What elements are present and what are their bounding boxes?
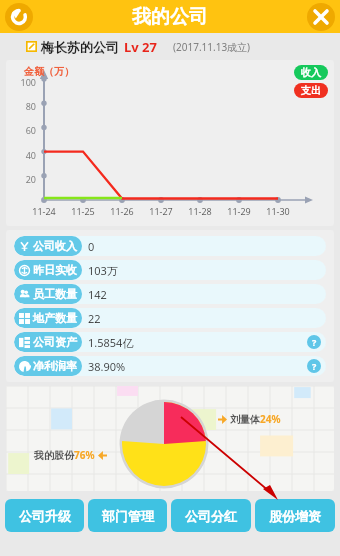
- staticText: 股份增资: [269, 508, 321, 524]
- button[interactable]: 公司分红: [171, 499, 251, 532]
- button[interactable]: Back: [5, 3, 33, 31]
- staticText: 11-28: [182, 205, 218, 217]
- button[interactable]: 昨日实收: [14, 260, 326, 280]
- button[interactable]: 净利润率: [14, 356, 326, 376]
- staticText: 刘量体: [230, 413, 260, 426]
- staticText: 我的公司: [132, 5, 208, 29]
- button[interactable]: 公司资产: [14, 332, 326, 352]
- staticText: 公司收入: [33, 239, 77, 253]
- staticText: 76%: [74, 448, 95, 462]
- staticText: 支出: [301, 84, 321, 97]
- staticText: ?: [312, 336, 317, 348]
- button[interactable]: 部门管理: [88, 499, 167, 532]
- staticText: 38.90%: [88, 359, 126, 374]
- staticText: 梅长苏的公司: [41, 39, 119, 55]
- staticText: 11-29: [221, 205, 257, 217]
- button[interactable]: 股份增资: [255, 499, 335, 532]
- staticText: 24%: [260, 412, 281, 426]
- staticText: 金额（万）: [24, 65, 74, 78]
- staticText: 100: [12, 76, 36, 88]
- staticText: 103万: [88, 263, 118, 278]
- staticText: 142: [88, 287, 107, 302]
- button[interactable]: Help: [307, 335, 321, 349]
- staticText: 60: [12, 124, 36, 136]
- button[interactable]: 支出: [294, 83, 328, 98]
- staticText: 11-26: [104, 205, 140, 217]
- staticText: ?: [312, 360, 317, 372]
- staticText: 昨日实收: [33, 263, 77, 277]
- staticText: 22: [88, 311, 101, 326]
- staticText: 80: [12, 100, 36, 112]
- staticText: 11-27: [143, 205, 179, 217]
- button[interactable]: 收入: [294, 65, 328, 80]
- staticText: 0: [88, 239, 95, 254]
- staticText: 公司升级: [19, 508, 71, 524]
- staticText: 净利润率: [33, 359, 77, 373]
- staticText: 员工数量: [33, 287, 77, 301]
- staticText: 公司资产: [33, 335, 77, 349]
- staticText: 20: [12, 173, 36, 185]
- button[interactable]: 公司收入: [14, 236, 326, 256]
- staticText: 地产数量: [33, 311, 77, 325]
- staticText: 收入: [301, 66, 321, 79]
- staticText: 11-30: [260, 205, 296, 217]
- staticText: 40: [12, 149, 36, 161]
- button[interactable]: Close: [307, 3, 335, 31]
- button[interactable]: Help: [307, 359, 321, 373]
- staticText: (2017.11.13成立): [173, 40, 251, 54]
- staticText: 11-24: [26, 205, 62, 217]
- button[interactable]: 公司升级: [5, 499, 84, 532]
- staticText: 公司分红: [185, 508, 237, 524]
- staticText: 我的股份: [34, 449, 74, 462]
- staticText: 1.5854亿: [88, 335, 134, 350]
- button[interactable]: 地产数量: [14, 308, 326, 328]
- button[interactable]: 员工数量: [14, 284, 326, 304]
- staticText: 11-25: [65, 205, 101, 217]
- staticText: Lv 27: [124, 38, 157, 56]
- staticText: 部门管理: [102, 508, 154, 524]
